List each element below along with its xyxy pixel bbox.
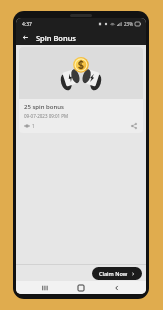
button[interactable]: Claim Now — [92, 267, 142, 280]
staticText: Claim Now — [99, 270, 128, 277]
staticText: 4:37 — [22, 21, 32, 28]
button[interactable]: 1 — [24, 123, 35, 129]
button[interactable]: 25 spin bonus — [19, 47, 143, 133]
button[interactable]: Back — [110, 281, 124, 294]
staticText: 09-07-2023 09:01 PM — [24, 113, 69, 119]
button[interactable]: Recents — [38, 281, 52, 294]
button[interactable]: Home — [74, 281, 88, 294]
staticText: 1 — [32, 123, 35, 129]
button[interactable]: Share — [130, 122, 138, 130]
staticText: 25 spin bonus — [24, 103, 64, 111]
staticText: 23% — [124, 21, 133, 27]
button[interactable]: Back — [20, 32, 31, 43]
staticText: Spin Bonus — [36, 33, 76, 43]
